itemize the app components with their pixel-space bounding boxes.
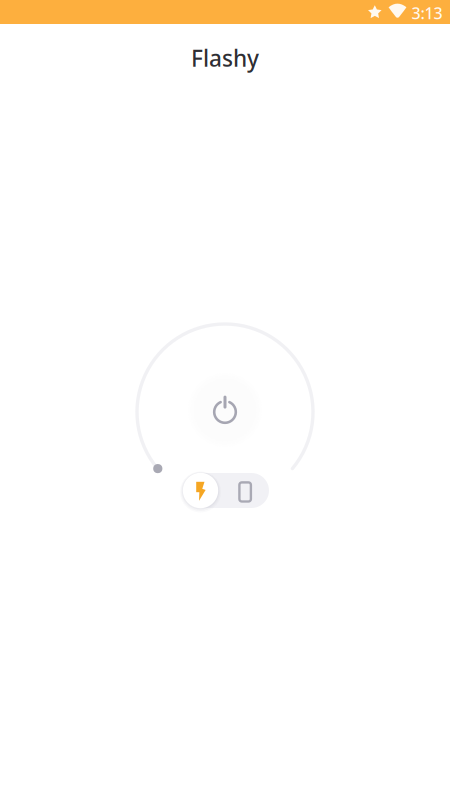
button[interactable]: Power [188,373,262,447]
staticText: 3:13 [411,2,442,24]
button[interactable]: Flashlight [183,474,218,512]
button[interactable]: Screen light [227,473,262,508]
staticText: Flashy [191,43,259,73]
